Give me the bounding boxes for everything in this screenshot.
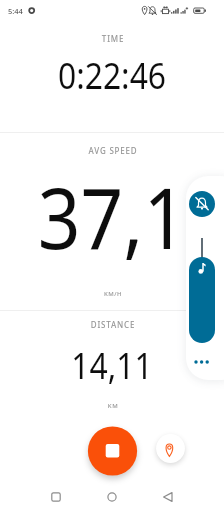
staticText: KM bbox=[1, 402, 224, 410]
button[interactable]: Recent apps bbox=[42, 482, 70, 512]
staticText: AVG SPEED bbox=[1, 145, 224, 156]
button[interactable]: More options bbox=[190, 350, 214, 374]
staticText: 14,11 bbox=[13, 341, 211, 390]
button[interactable]: Back bbox=[154, 482, 182, 512]
button[interactable]: Mute notifications bbox=[189, 191, 215, 217]
staticText: KM/H bbox=[1, 290, 224, 298]
button[interactable]: Stop bbox=[88, 426, 137, 475]
button[interactable]: Home bbox=[98, 482, 126, 512]
staticText: 5:44 bbox=[8, 6, 23, 16]
button[interactable]: Map bbox=[156, 433, 185, 462]
staticText: DISTANCE bbox=[1, 319, 224, 330]
staticText: TIME bbox=[1, 33, 224, 44]
staticText: 0:22:46 bbox=[13, 51, 211, 100]
staticText: 37,1 bbox=[13, 159, 211, 274]
